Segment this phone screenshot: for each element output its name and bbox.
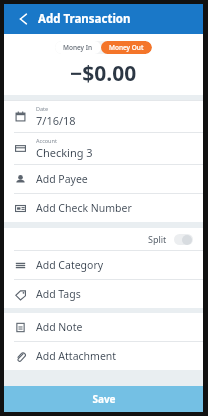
staticText: Add Attachment bbox=[36, 349, 117, 363]
staticText: Date bbox=[36, 105, 49, 112]
button[interactable]: Add Category bbox=[4, 251, 203, 279]
staticText: Add Transaction bbox=[38, 11, 131, 27]
staticText: Add Payee bbox=[36, 172, 88, 186]
button[interactable]: Add Payee bbox=[4, 165, 203, 193]
staticText: Save bbox=[92, 392, 116, 406]
button[interactable]: Add Attachment bbox=[4, 342, 203, 370]
button[interactable]: Money Out bbox=[101, 41, 152, 54]
staticText: Account bbox=[36, 137, 57, 144]
staticText: Split bbox=[148, 233, 167, 245]
staticText: Checking 3 bbox=[36, 145, 93, 160]
button[interactable]: Money In bbox=[55, 41, 101, 54]
staticText: −$0.00 bbox=[70, 59, 137, 88]
button[interactable]: Add Note bbox=[4, 313, 203, 341]
button[interactable]: Date bbox=[4, 101, 203, 132]
button[interactable]: Add Check Number bbox=[4, 194, 203, 222]
button[interactable]: Add Tags bbox=[4, 280, 203, 308]
staticText: Add Check Number bbox=[36, 201, 132, 215]
staticText: Add Tags bbox=[36, 287, 81, 301]
staticText: Money In bbox=[63, 43, 93, 52]
staticText: Add Category bbox=[36, 258, 104, 272]
button[interactable]: Account bbox=[4, 133, 203, 164]
button[interactable]: Back bbox=[12, 9, 32, 29]
staticText: 7/16/18 bbox=[36, 113, 76, 128]
button[interactable]: Save bbox=[4, 386, 203, 412]
staticText: Add Note bbox=[36, 320, 83, 334]
staticText: Money Out bbox=[109, 43, 144, 52]
button[interactable]: Split bbox=[4, 228, 203, 250]
